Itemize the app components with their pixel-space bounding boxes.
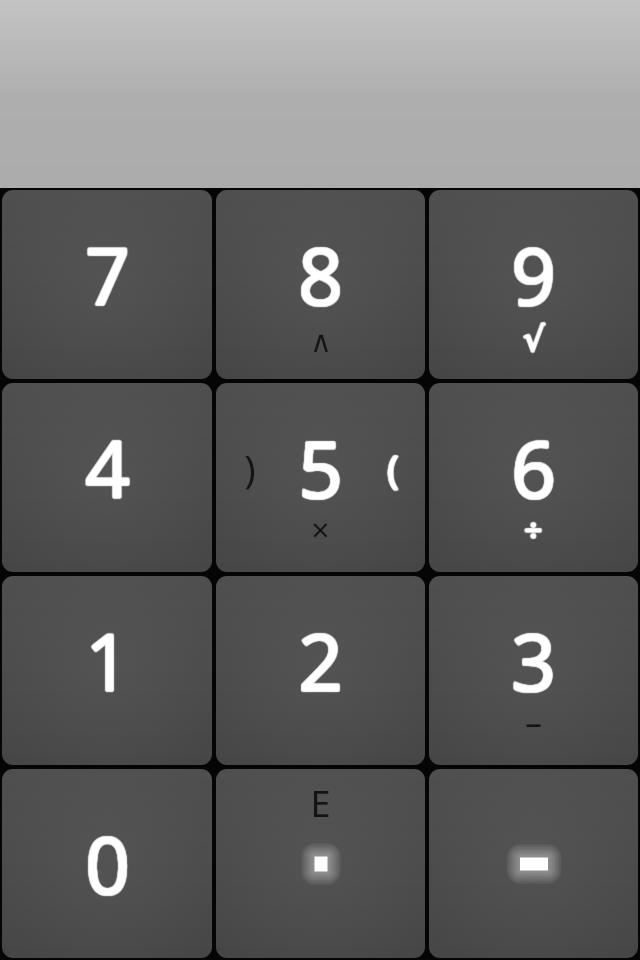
staticText: 1 [86,608,131,714]
staticText: 3 [511,609,556,715]
staticText: 4 [85,417,130,523]
staticText: 3 [510,609,555,715]
staticText: √ [523,320,545,360]
staticText: 6 [511,414,556,520]
staticText: 9 [511,223,556,329]
staticText: 0 [85,810,130,916]
button[interactable]: 0 [2,769,212,958]
button[interactable]: 1 [2,576,212,765]
staticText: 5 [297,415,342,521]
staticText: 0 [84,810,129,916]
staticText: 3 [511,607,556,713]
button[interactable]: 4 [2,383,212,572]
staticText: 5 [299,414,344,520]
staticText: √ [525,319,547,359]
button[interactable]: ) [216,383,425,572]
button[interactable]: 7 [2,190,212,379]
staticText: 1 [86,607,131,713]
staticText: 4 [86,415,131,521]
button[interactable]: 8 [216,190,425,379]
button[interactable]: Decimal point [216,769,425,958]
staticText: 0 [85,812,130,918]
staticText: ÷ [523,509,542,553]
staticText: √ [522,319,544,359]
staticText: ( [387,443,399,495]
staticText: 1 [84,607,129,713]
button[interactable]: 2 [216,576,425,765]
staticText: 9 [510,221,555,327]
staticText: 8 [298,222,343,328]
staticText: √ [524,318,546,358]
staticText: 3 [510,608,555,714]
staticText: 5 [299,416,344,522]
staticText: 3 [512,607,557,713]
staticText: 7 [85,221,130,327]
staticText: 1 [84,608,129,714]
staticText: 5 [297,416,342,522]
staticText: 1 [86,608,131,714]
staticText: ÷ [523,508,542,552]
staticText: 3 [510,609,555,715]
staticText: ( [388,442,400,494]
staticText: 2 [298,610,343,716]
button[interactable]: 6 [429,383,638,572]
staticText: 8 [298,221,343,327]
staticText: √ [524,320,546,360]
staticText: 6 [510,415,555,521]
staticText: 4 [85,414,130,520]
staticText: 4 [86,414,131,520]
staticText: 4 [86,416,131,522]
button[interactable]: 9 [429,190,638,379]
staticText: 5 [298,415,343,521]
staticText: 3 [511,607,556,713]
staticText: 6 [511,415,556,521]
staticText: 5 [299,414,344,520]
staticText: 4 [85,415,130,521]
staticText: 1 [86,609,131,715]
staticText: 7 [85,222,130,328]
staticText: 2 [298,607,343,713]
staticText: ( [386,442,398,494]
staticText: ( [387,442,399,494]
staticText: 0 [84,811,129,917]
staticText: 2 [299,608,344,714]
staticText: 4 [85,415,130,521]
staticText: √ [523,317,545,357]
staticText: 0 [85,811,130,917]
staticText: 8 [299,222,344,328]
staticText: 9 [510,223,555,329]
staticText: 9 [512,222,557,328]
staticText: 6 [510,414,555,520]
staticText: 6 [510,415,555,521]
staticText: 9 [511,221,556,327]
staticText: 8 [297,223,342,329]
staticText: 6 [511,415,556,521]
staticText: √ [522,318,544,358]
staticText: 0 [85,812,130,918]
staticText: 1 [87,608,132,714]
staticText: 8 [298,223,343,329]
button[interactable]: Minus [429,769,638,958]
staticText: 3 [511,608,556,714]
staticText: 8 [299,221,344,327]
staticText: √ [524,318,546,358]
staticText: 8 [297,221,342,327]
staticText: 8 [300,222,345,328]
staticText: 9 [510,223,555,329]
staticText: 8 [299,223,344,329]
staticText: 6 [510,414,555,520]
staticText: ÷ [524,509,543,553]
staticText: 4 [84,416,129,522]
staticText: 7 [83,222,128,328]
staticText: 8 [297,223,342,329]
staticText: 9 [511,223,556,329]
staticText: ( [388,443,400,495]
staticText: ( [388,441,400,493]
staticText: 0 [85,811,130,917]
button[interactable]: 3 [429,576,638,765]
staticText: 9 [511,221,556,327]
staticText: 9 [511,222,556,328]
staticText: ÷ [524,510,543,554]
staticText: 2 [299,607,344,713]
staticText: 6 [512,414,557,520]
